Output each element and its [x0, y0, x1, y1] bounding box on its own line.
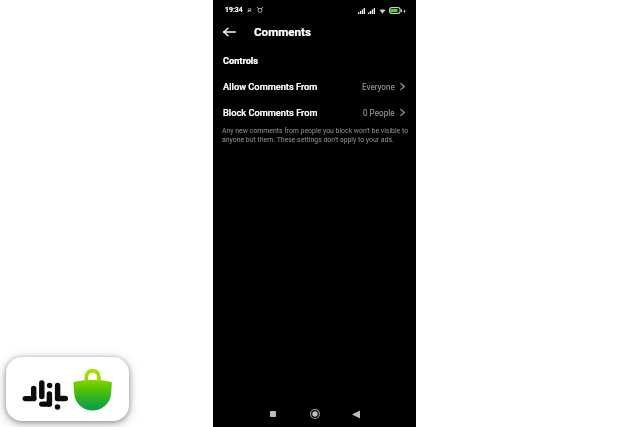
staticText: Comments [254, 25, 311, 39]
staticText: Controls [223, 55, 259, 66]
button[interactable]: Home [305, 404, 325, 424]
staticText: Any new comments from people you block w… [222, 127, 413, 144]
button[interactable]: Allow Comments From [213, 75, 416, 98]
staticText: Block Comments From [223, 107, 318, 118]
button[interactable]: Recents [263, 404, 283, 424]
button[interactable]: Block Comments From [213, 101, 416, 124]
staticText: Allow Comments From [223, 81, 318, 92]
staticText: Everyone [362, 82, 395, 92]
button[interactable]: Back [218, 20, 241, 43]
button[interactable]: Back [346, 404, 366, 424]
staticText: 19:34 [225, 6, 243, 14]
button[interactable]: Bazaar [6, 357, 129, 421]
staticText: 0 People [363, 108, 395, 118]
